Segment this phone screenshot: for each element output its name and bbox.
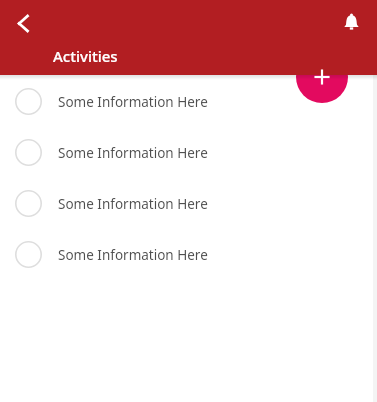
button[interactable]: Some Information Here (0, 76, 377, 127)
button[interactable]: Some Information Here (0, 229, 377, 280)
button[interactable]: Some Information Here (0, 127, 377, 178)
staticText: Some Information Here (58, 144, 208, 162)
staticText: Some Information Here (58, 246, 208, 264)
staticText: Some Information Here (58, 195, 208, 213)
button[interactable]: Notifications (331, 2, 371, 42)
staticText: Activities (53, 46, 118, 66)
staticText: Some Information Here (58, 93, 208, 111)
button[interactable]: Some Information Here (0, 178, 377, 229)
button[interactable]: Back (3, 3, 43, 43)
button[interactable]: Add activity (296, 51, 348, 103)
